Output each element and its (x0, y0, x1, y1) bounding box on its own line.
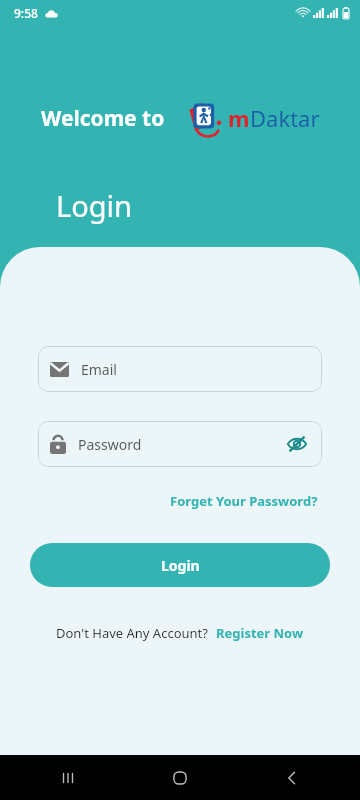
staticText: Welcome to (41, 104, 165, 133)
button[interactable]: Home (158, 756, 202, 800)
button[interactable]: Register Now (216, 624, 304, 642)
button[interactable]: Back (270, 756, 314, 800)
staticText: Login (161, 556, 200, 575)
button[interactable]: Login (30, 543, 330, 587)
button[interactable]: Toggle password visibility (284, 431, 310, 457)
button[interactable]: Password (38, 421, 322, 467)
staticText: Login (56, 186, 132, 225)
staticText: Daktar (250, 103, 320, 133)
staticText: Don't Have Any Account? (56, 624, 208, 642)
staticText: 9:58 (14, 5, 38, 21)
staticText: m (228, 103, 250, 133)
button[interactable]: Email (38, 346, 322, 392)
staticText: Forget Your Password? (170, 492, 318, 510)
button[interactable]: Recents (46, 756, 90, 800)
staticText: Register Now (216, 624, 304, 642)
staticText: Email (81, 360, 310, 379)
staticText: Password (78, 435, 284, 454)
button[interactable]: Forget Your Password? (166, 488, 322, 514)
